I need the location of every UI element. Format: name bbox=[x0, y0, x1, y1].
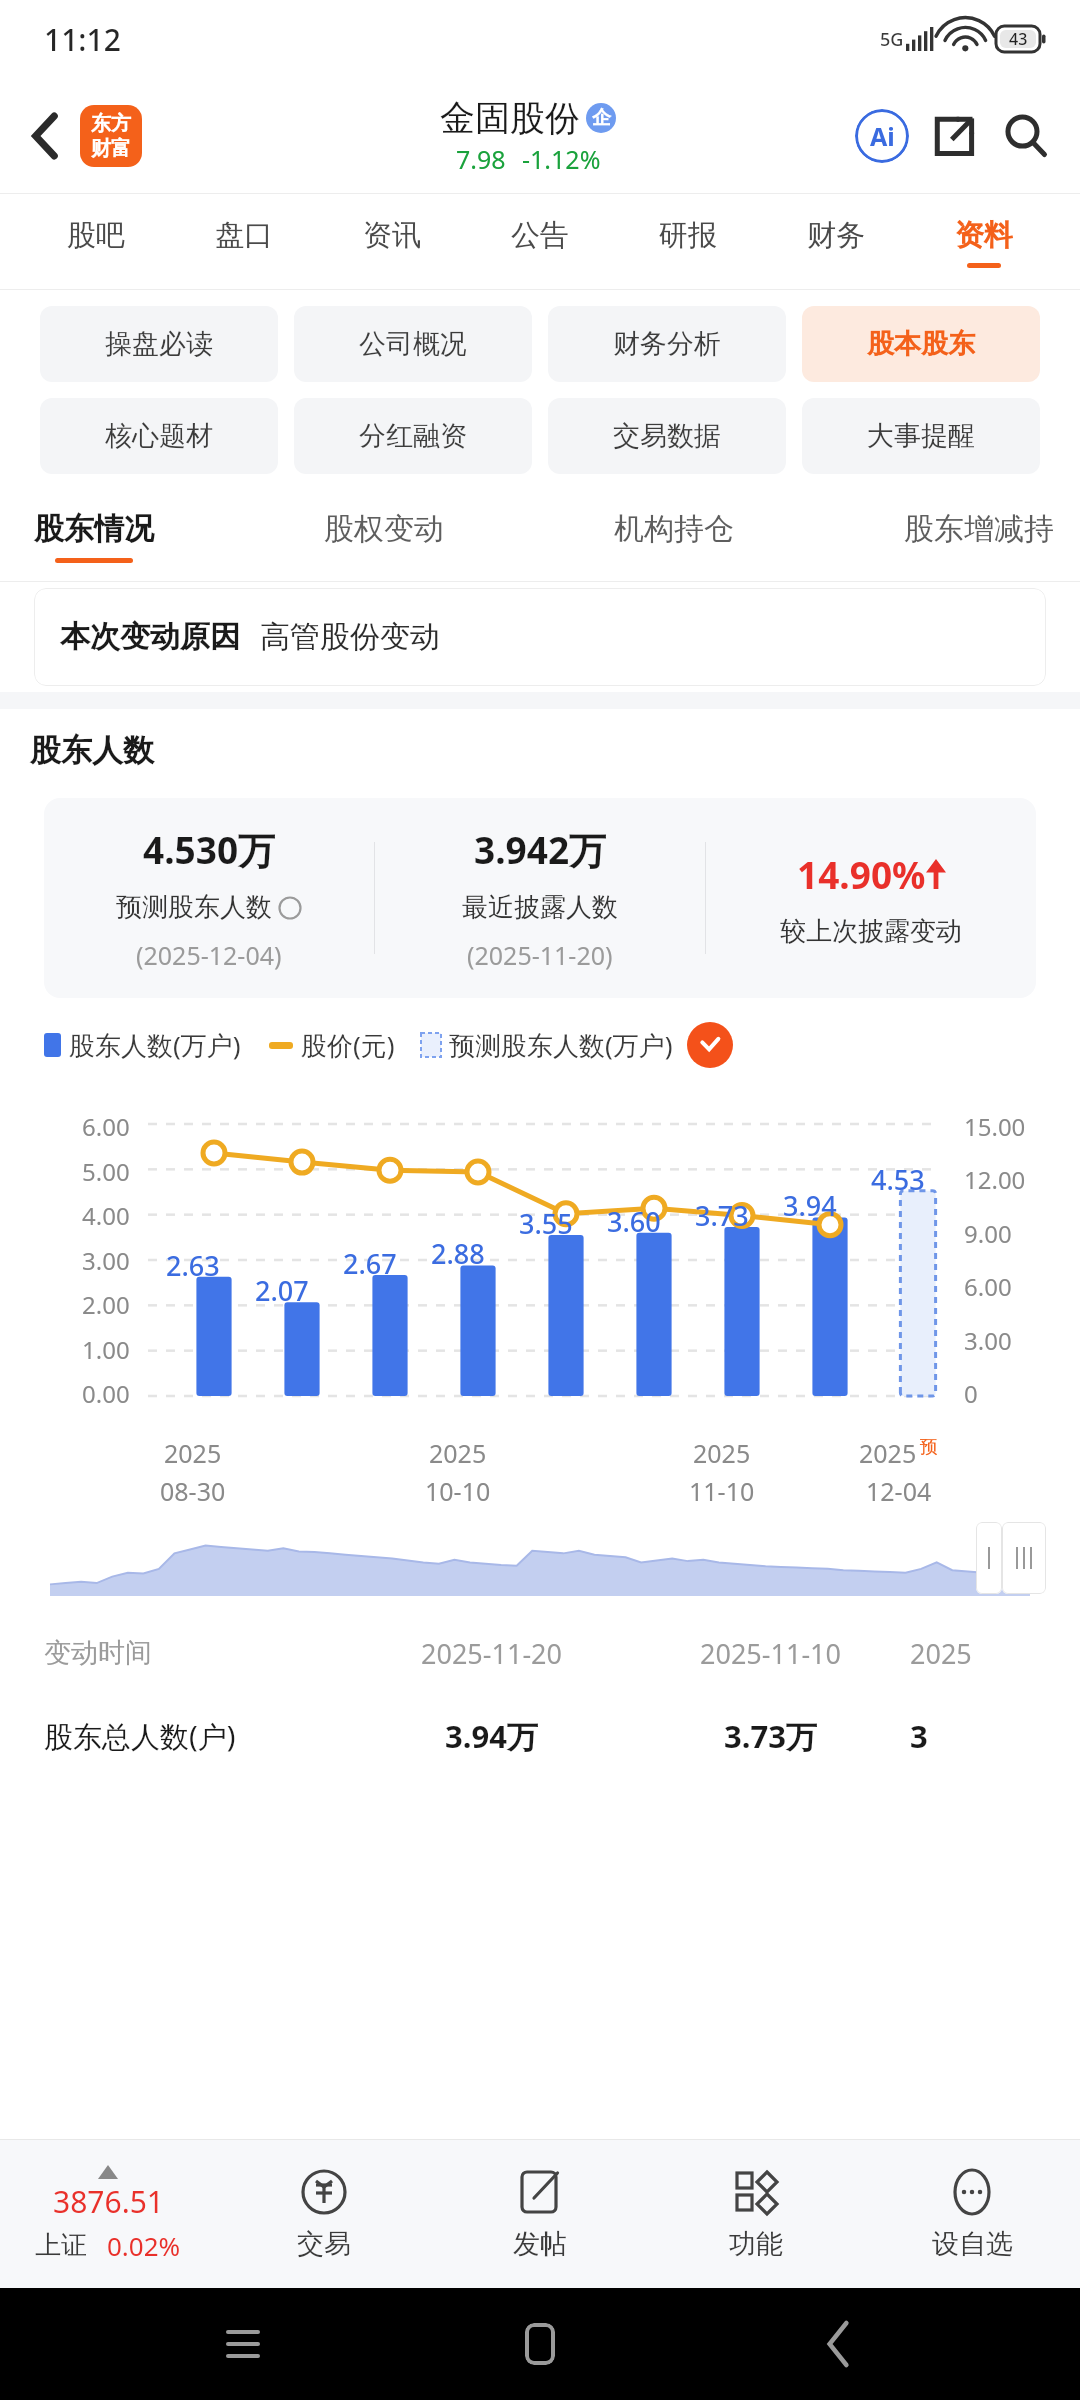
staticText: 股东人数(万户) bbox=[69, 1027, 241, 1063]
button[interactable]: 交易数据 bbox=[548, 398, 786, 474]
button[interactable]: 发帖 bbox=[432, 2140, 648, 2288]
staticText: 预 bbox=[920, 1436, 938, 1459]
staticText: 研报 bbox=[659, 217, 717, 254]
button[interactable]: 大事提醒 bbox=[802, 398, 1040, 474]
staticText: 金固股份 bbox=[440, 96, 580, 140]
button[interactable]: Share bbox=[918, 100, 990, 172]
staticText: 10-10 bbox=[425, 1474, 491, 1508]
button[interactable]: Back bbox=[783, 2289, 893, 2399]
staticText: 1.00 bbox=[82, 1333, 130, 1366]
staticText: 交易数据 bbox=[613, 419, 721, 453]
staticText: 2025 bbox=[164, 1436, 222, 1470]
staticText: 预测股东人数 bbox=[116, 891, 272, 924]
button[interactable]: 股东情况 bbox=[34, 490, 154, 582]
staticText: 2.67 bbox=[343, 1245, 397, 1282]
button[interactable]: 股权变动 bbox=[324, 490, 444, 582]
staticText: 财富 bbox=[91, 136, 131, 161]
button[interactable]: 研报 bbox=[614, 194, 762, 290]
button[interactable]: Back bbox=[18, 108, 74, 164]
button[interactable]: Search bbox=[990, 100, 1062, 172]
staticText: 上证 bbox=[35, 2229, 87, 2262]
staticText: 15.00 bbox=[964, 1110, 1026, 1143]
staticText: 9.00 bbox=[964, 1217, 1012, 1250]
staticText: 7.98 bbox=[456, 142, 506, 176]
staticText: 08-30 bbox=[160, 1474, 226, 1508]
staticText: 0.00 bbox=[82, 1377, 130, 1410]
staticText: 11-10 bbox=[689, 1474, 755, 1508]
staticText: 2025-11-20 bbox=[352, 1635, 631, 1672]
staticText: 财务分析 bbox=[613, 327, 721, 361]
button[interactable]: 资料 bbox=[910, 194, 1058, 290]
staticText: 股东增减持 bbox=[904, 510, 1054, 548]
button[interactable]: 股本股东 bbox=[802, 306, 1040, 382]
staticText: 11:12 bbox=[44, 19, 121, 60]
staticText: 资讯 bbox=[363, 217, 421, 254]
button[interactable]: 交易 bbox=[216, 2140, 432, 2288]
staticText: 2025-11-10 bbox=[631, 1635, 910, 1672]
staticText: 2.88 bbox=[431, 1235, 485, 1272]
staticText: 财务 bbox=[807, 217, 865, 254]
button[interactable]: 股吧 bbox=[22, 194, 170, 290]
button[interactable]: 本次变动原因 bbox=[34, 588, 1046, 686]
button[interactable]: 左手柄 bbox=[976, 1522, 1002, 1594]
button[interactable]: 公司概况 bbox=[294, 306, 532, 382]
staticText: 2025 bbox=[910, 1635, 1036, 1672]
staticText: 大事提醒 bbox=[867, 419, 975, 453]
staticText: 机构持仓 bbox=[614, 510, 734, 548]
button[interactable]: Recents bbox=[188, 2289, 298, 2399]
button[interactable]: 股东增减持 bbox=[904, 490, 1054, 582]
staticText: 设自选 bbox=[932, 2227, 1013, 2261]
button[interactable]: 资讯 bbox=[318, 194, 466, 290]
staticText: 2025 bbox=[693, 1436, 751, 1470]
button[interactable]: AI 助手 bbox=[846, 100, 918, 172]
staticText: 2.63 bbox=[166, 1247, 220, 1284]
staticText: 操盘必读 bbox=[105, 327, 213, 361]
button[interactable]: 右手柄 bbox=[1002, 1522, 1046, 1594]
staticText: 交易 bbox=[297, 2227, 351, 2261]
button[interactable]: 核心题材 bbox=[40, 398, 278, 474]
staticText: 3.94万 bbox=[352, 1715, 631, 1757]
staticText: Ai bbox=[870, 119, 895, 153]
staticText: 0.02% bbox=[107, 2228, 181, 2263]
staticText: 发帖 bbox=[513, 2227, 567, 2261]
button[interactable]: 机构持仓 bbox=[614, 490, 734, 582]
staticText: 3.00 bbox=[964, 1324, 1012, 1357]
staticText: 股权变动 bbox=[324, 510, 444, 548]
button[interactable]: 设自选 bbox=[864, 2140, 1080, 2288]
staticText: 较上次披露变动 bbox=[780, 915, 962, 948]
button[interactable]: 分红融资 bbox=[294, 398, 532, 474]
staticText: 3.60 bbox=[607, 1203, 661, 1240]
button[interactable]: 财务分析 bbox=[548, 306, 786, 382]
staticText: 3.942万 bbox=[474, 824, 607, 875]
button[interactable]: Home bbox=[485, 2289, 595, 2399]
staticText: 公司概况 bbox=[359, 327, 467, 361]
staticText: 3.00 bbox=[82, 1244, 130, 1277]
staticText: 企 bbox=[592, 106, 611, 130]
staticText: 14.90% bbox=[797, 849, 926, 899]
staticText: 43 bbox=[1009, 28, 1028, 50]
button[interactable]: 展开 bbox=[687, 1022, 733, 1068]
staticText: 3 bbox=[910, 1715, 1036, 1757]
staticText: 0 bbox=[964, 1377, 978, 1410]
staticText: 3.94 bbox=[783, 1187, 837, 1224]
staticText: 东方 bbox=[91, 111, 131, 136]
staticText: 股东总人数(户) bbox=[44, 1716, 352, 1756]
staticText: 股东人数 bbox=[30, 731, 154, 770]
staticText: 3.73 bbox=[695, 1197, 749, 1234]
staticText: 5.00 bbox=[82, 1155, 130, 1188]
button[interactable]: 公告 bbox=[466, 194, 614, 290]
button[interactable]: 3876.51 bbox=[0, 2140, 216, 2288]
button[interactable]: 东方财富 bbox=[80, 105, 142, 167]
staticText: 股吧 bbox=[67, 217, 125, 254]
button[interactable]: 功能 bbox=[648, 2140, 864, 2288]
staticText: 公告 bbox=[511, 217, 569, 254]
staticText: 3.55 bbox=[519, 1205, 573, 1242]
staticText: 资料 bbox=[955, 217, 1013, 254]
staticText: 2025 bbox=[429, 1436, 487, 1470]
staticText: 功能 bbox=[729, 2227, 783, 2261]
button[interactable]: 财务 bbox=[762, 194, 910, 290]
staticText: 4.530万 bbox=[143, 824, 276, 875]
button[interactable]: 盘口 bbox=[170, 194, 318, 290]
staticText: 变动时间 bbox=[44, 1636, 352, 1670]
button[interactable]: 操盘必读 bbox=[40, 306, 278, 382]
